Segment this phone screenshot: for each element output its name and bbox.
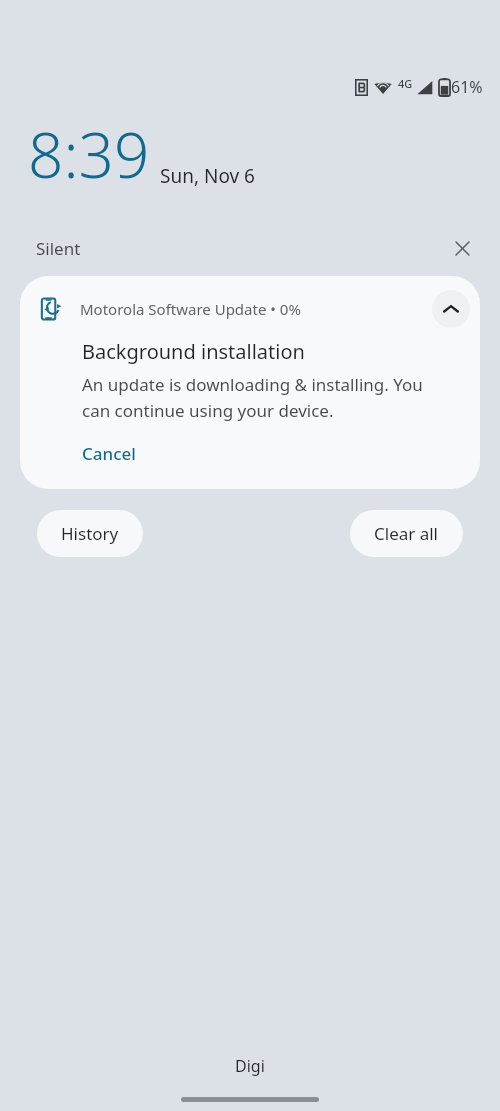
staticText: Background installation — [82, 338, 305, 365]
button[interactable]: Collapse notification — [432, 290, 470, 328]
staticText: Cancel — [82, 442, 136, 465]
staticText: Clear all — [374, 522, 439, 545]
button[interactable]: History — [37, 510, 143, 557]
button[interactable]: Clear all — [350, 510, 463, 557]
button[interactable]: Cancel — [70, 434, 148, 473]
staticText: Sun, Nov 6 — [160, 163, 255, 189]
staticText: 8:39 — [28, 112, 150, 196]
staticText: History — [61, 522, 119, 545]
staticText: 61% — [451, 76, 483, 98]
staticText: 4G — [398, 76, 413, 91]
button[interactable]: Motorola Software Update • 0% — [20, 276, 480, 489]
button[interactable]: Dismiss silent notifications — [446, 232, 478, 264]
staticText: Digi — [235, 1055, 265, 1077]
staticText: Silent — [36, 237, 81, 260]
staticText: An update is downloading & installing. Y… — [82, 373, 450, 422]
staticText: Motorola Software Update • 0% — [80, 299, 301, 319]
